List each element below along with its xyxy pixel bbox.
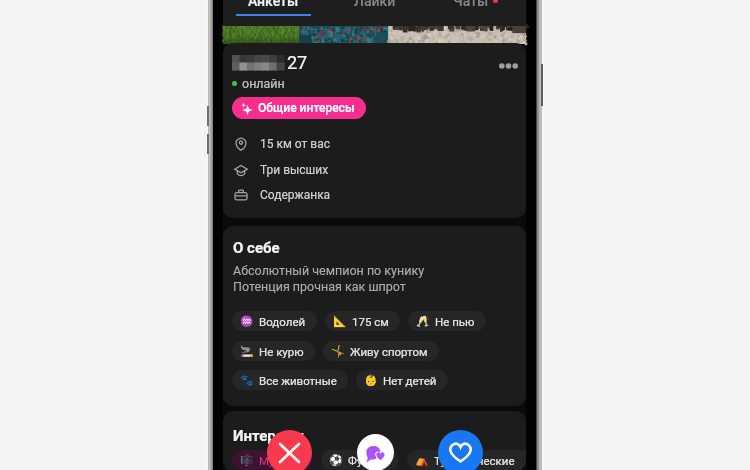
staticText: Не пью xyxy=(435,315,475,328)
staticText: Живу спортом xyxy=(350,345,428,358)
button[interactable]: Dislike xyxy=(267,430,312,470)
button[interactable]: 🤸 xyxy=(323,341,439,361)
button[interactable]: ⚽ xyxy=(321,450,399,470)
button[interactable]: ⛺ xyxy=(407,450,526,470)
staticText: Интересы xyxy=(233,427,305,445)
button[interactable]: More options xyxy=(496,56,520,76)
button[interactable]: 🎼 xyxy=(232,450,313,470)
staticText: 175 см xyxy=(352,315,389,328)
staticText: 🚬 xyxy=(240,345,254,358)
staticText: 15 км от вас xyxy=(260,137,330,151)
staticText: Музыка xyxy=(259,454,302,467)
button[interactable]: Лайки xyxy=(324,0,425,26)
staticText: Водолей xyxy=(259,315,306,328)
staticText: Все животные xyxy=(259,374,337,387)
staticText: Потенция прочная как шпрот xyxy=(233,279,406,294)
staticText: Общие интересы xyxy=(258,101,355,115)
button[interactable]: Message xyxy=(357,434,394,470)
button[interactable]: 🥂 xyxy=(408,311,486,331)
staticText: Анкеты xyxy=(248,0,299,9)
staticText: 📐 xyxy=(333,315,347,328)
staticText: Туристические походы xyxy=(434,454,524,467)
staticText: ⛺ xyxy=(415,454,429,467)
staticText: ♒️ xyxy=(240,315,254,328)
staticText: 🥂 xyxy=(416,315,430,328)
button[interactable]: Like xyxy=(438,430,483,470)
staticText: Абсолютный чемпион по кунику xyxy=(233,263,425,278)
staticText: Футбол xyxy=(348,454,388,467)
button[interactable]: ♒️ xyxy=(232,311,317,331)
staticText: О себе xyxy=(233,239,280,257)
staticText: Три высших xyxy=(260,163,329,177)
staticText: 🎼 xyxy=(240,454,254,467)
staticText: ⚽ xyxy=(329,454,343,467)
staticText: Не курю xyxy=(259,345,304,358)
staticText: онлайн xyxy=(242,76,285,91)
button[interactable]: Общие интересы xyxy=(232,97,366,119)
button[interactable]: 🚬 xyxy=(232,341,315,361)
staticText: 🐾 xyxy=(240,374,254,387)
button[interactable]: Анкеты xyxy=(223,0,324,26)
staticText: Чаты xyxy=(453,0,489,9)
staticText: 👶 xyxy=(364,374,378,387)
button[interactable]: 👶 xyxy=(356,370,448,390)
staticText: 🤸 xyxy=(331,345,345,358)
staticText: Содержанка xyxy=(260,188,331,202)
button[interactable]: Чаты xyxy=(425,0,526,26)
staticText: 27 xyxy=(287,52,308,73)
button[interactable]: 🐾 xyxy=(232,370,348,390)
button[interactable]: 📐 xyxy=(325,311,400,331)
staticText: Лайки xyxy=(354,0,396,9)
staticText: Нет детей xyxy=(383,374,437,387)
